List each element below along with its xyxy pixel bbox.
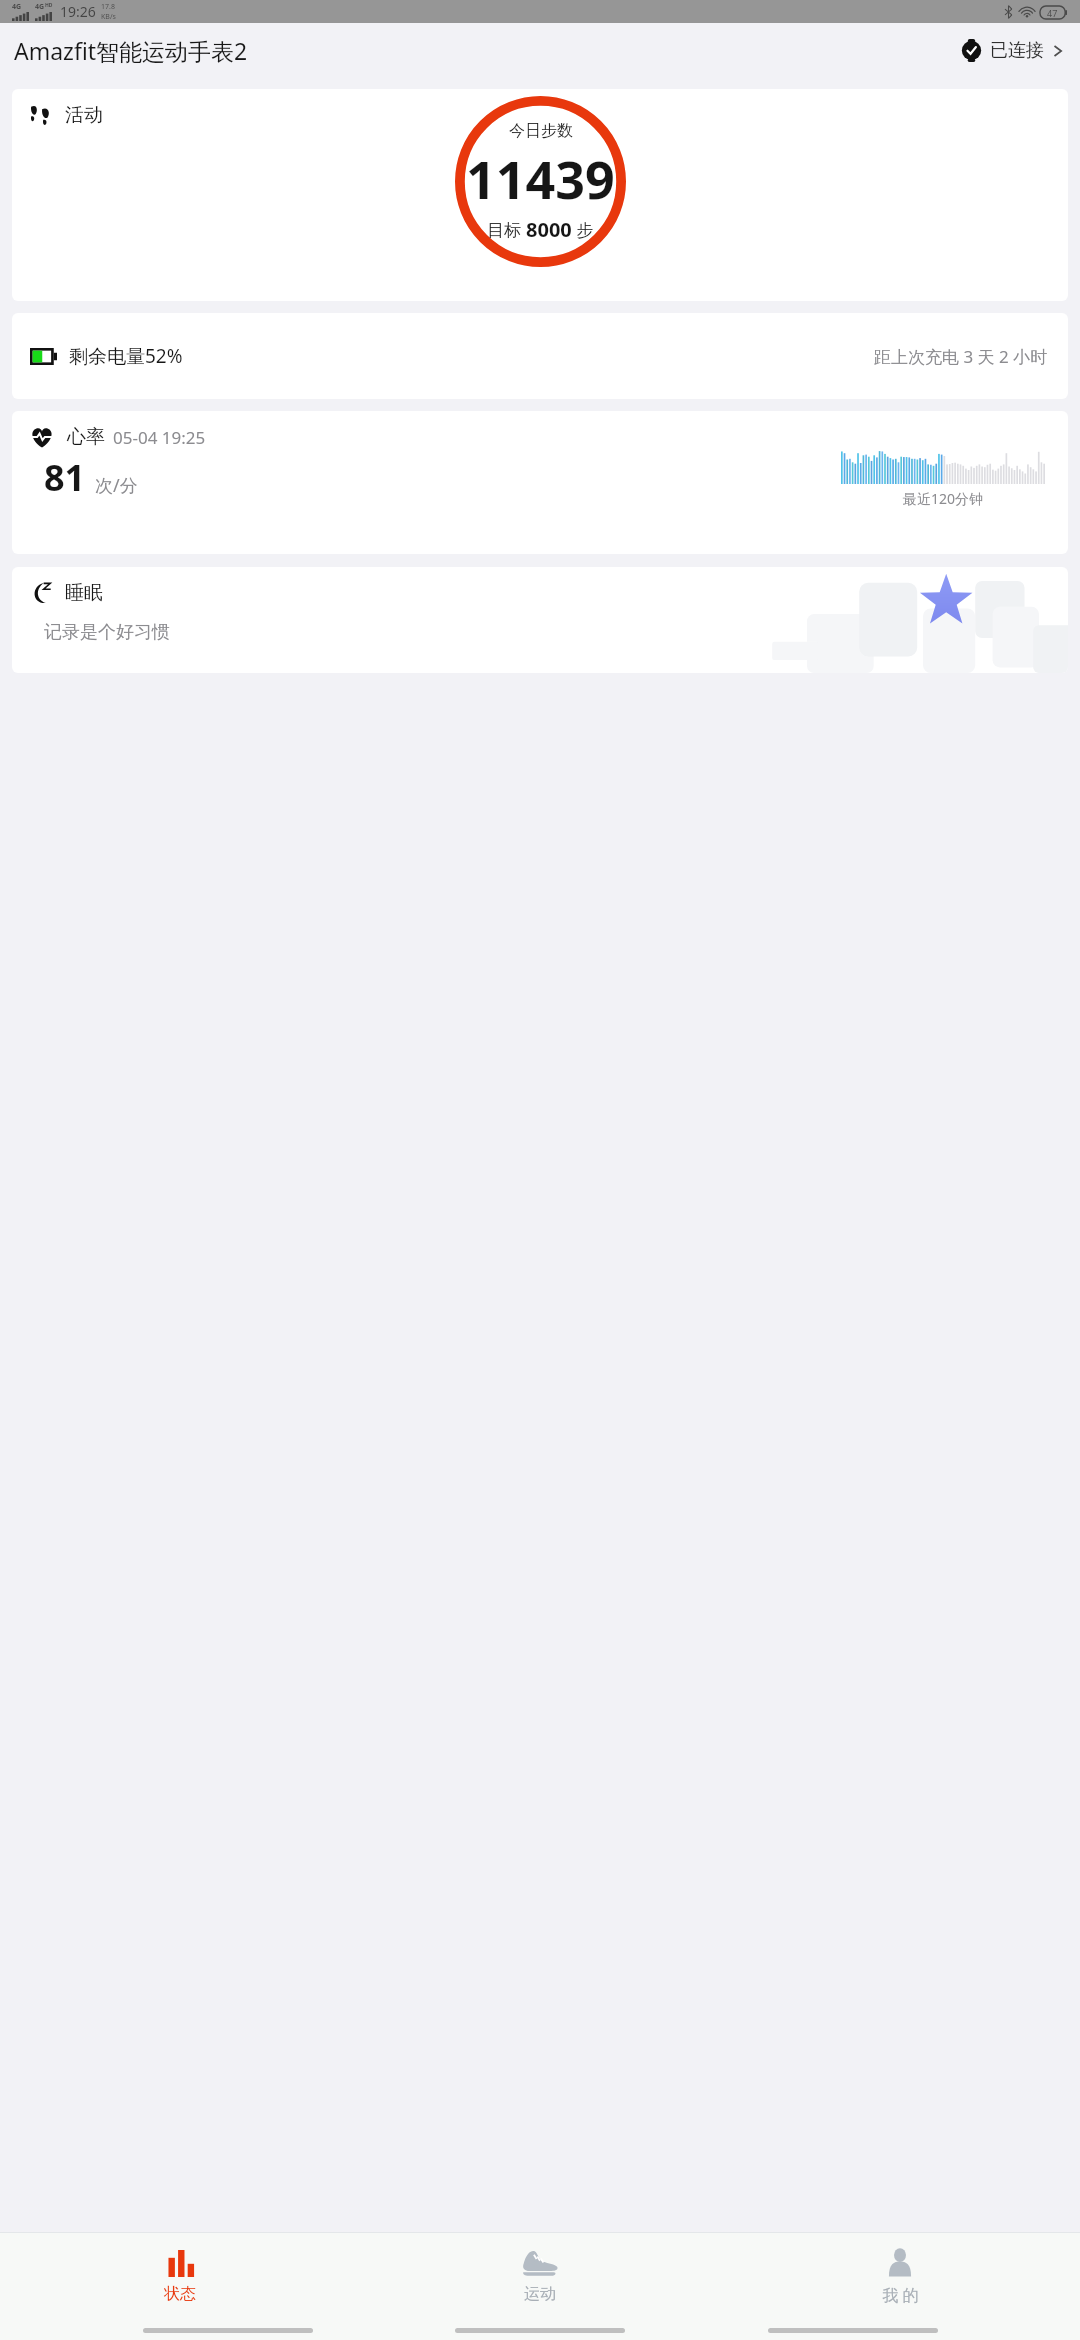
staticText: 心率 [67, 425, 105, 449]
staticText: 已连接 [990, 39, 1044, 62]
staticText: 剩余电量52% [69, 343, 183, 369]
staticText: 睡眠 [65, 581, 103, 605]
staticText: 记录是个好习惯 [44, 621, 170, 644]
staticText: 目标 [487, 218, 526, 241]
staticText: 活动 [65, 103, 103, 127]
button[interactable]: 状态 [0, 2233, 360, 2328]
staticText: 47 [1047, 7, 1058, 19]
staticText: KB/s [101, 12, 116, 22]
button[interactable]: 运动 [360, 2233, 720, 2328]
staticText: 4G [35, 2, 45, 12]
staticText: 状态 [164, 2284, 196, 2304]
button[interactable]: 活动 [12, 89, 1068, 301]
staticText: 05-04 19:25 [113, 426, 206, 449]
button[interactable]: 睡眠 [12, 567, 1068, 673]
button[interactable]: 已连接 [958, 35, 1066, 66]
staticText: Amazfit智能运动手表2 [14, 35, 248, 66]
button[interactable]: 心率 [12, 411, 1068, 554]
staticText: 我 的 [882, 2284, 919, 2306]
staticText: 运动 [524, 2284, 556, 2304]
button[interactable]: 我 的 [720, 2233, 1080, 2328]
staticText: 8000 [526, 216, 572, 243]
staticText: 17.8 [101, 2, 115, 12]
staticText: 次/分 [95, 473, 138, 498]
staticText: HD [45, 2, 53, 9]
staticText: 81 [44, 453, 86, 502]
staticText: 步 [572, 218, 594, 241]
staticText: 最近120分钟 [903, 489, 984, 508]
staticText: 今日步数 [509, 121, 573, 141]
button[interactable]: 剩余电量52% [12, 313, 1068, 399]
staticText: 19:26 [60, 2, 96, 21]
staticText: 11439 [466, 143, 615, 214]
staticText: 4G [12, 2, 22, 12]
staticText: 距上次充电 3 天 2 小时 [874, 345, 1048, 368]
